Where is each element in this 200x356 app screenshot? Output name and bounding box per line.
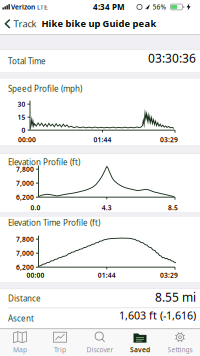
staticText: Ascent [8,313,34,324]
staticText: 8.5 [168,203,178,212]
staticText: Saved [130,345,150,354]
staticText: 15 [17,113,25,122]
staticText: Hike bike up Guide peak [41,17,156,30]
button[interactable]: Track [4,14,42,34]
staticText: 0.0 [30,203,40,212]
staticText: Verizon [11,2,35,11]
staticText: 7,800 [16,165,34,174]
staticText: 30 [17,100,25,109]
staticText: 03:29 [160,135,178,144]
staticText: Map [13,345,27,354]
staticText: Track [13,18,36,30]
staticText: 0 [21,126,25,135]
staticText: 6,200 [16,263,34,272]
staticText: Distance [8,293,41,304]
staticText: 03:30:36 [148,50,196,66]
staticText: Elevation Time Profile (ft) [8,217,100,228]
staticText: Total Time [8,56,46,66]
staticText: 00:00 [26,271,44,280]
staticText: 03:29 [160,271,178,280]
staticText: 7,000 [16,179,34,188]
staticText: Speed Profile (mph) [8,83,82,94]
button[interactable]: Map [0,329,40,355]
staticText: 8.55 mi [155,289,196,305]
staticText: 01:44 [93,135,111,144]
staticText: 7,000 [16,249,34,258]
staticText: 7,800 [16,235,34,244]
staticText: 56% [152,2,166,11]
staticText: Elevation Profile (ft) [8,157,80,167]
button[interactable]: Saved [120,329,160,355]
button[interactable]: Settings [160,329,200,355]
button[interactable]: Discover [80,329,120,355]
staticText: 00:00 [18,135,36,144]
staticText: 4:34 PM [93,2,125,12]
staticText: Discover [86,345,113,354]
staticText: LTE [37,2,48,11]
staticText: 6,200 [16,193,34,202]
staticText: 1,603 ft (-1,616) [119,308,196,323]
button[interactable]: Trip [40,329,80,355]
staticText: Trip [54,345,66,354]
staticText: Settings [167,345,192,354]
staticText: 01:44 [98,271,116,280]
staticText: 4.3 [102,203,112,212]
